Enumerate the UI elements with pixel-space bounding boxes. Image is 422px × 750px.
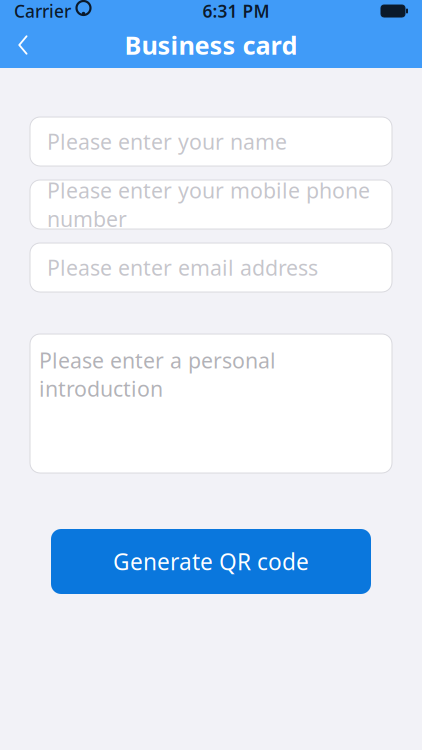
staticText: Carrier [14, 0, 71, 22]
staticText: Generate QR code [113, 546, 309, 576]
staticText: 6:31 PM [202, 0, 269, 22]
staticText: Please enter your mobile phone number [47, 176, 370, 233]
button[interactable]: Generate QR code [51, 529, 371, 594]
button[interactable]: Back [0, 22, 46, 68]
staticText: Please enter your name [47, 127, 287, 156]
staticText: Business card [124, 28, 297, 62]
staticText: Please enter email address [47, 253, 318, 282]
staticText: Please enter a personal introduction [39, 346, 276, 403]
